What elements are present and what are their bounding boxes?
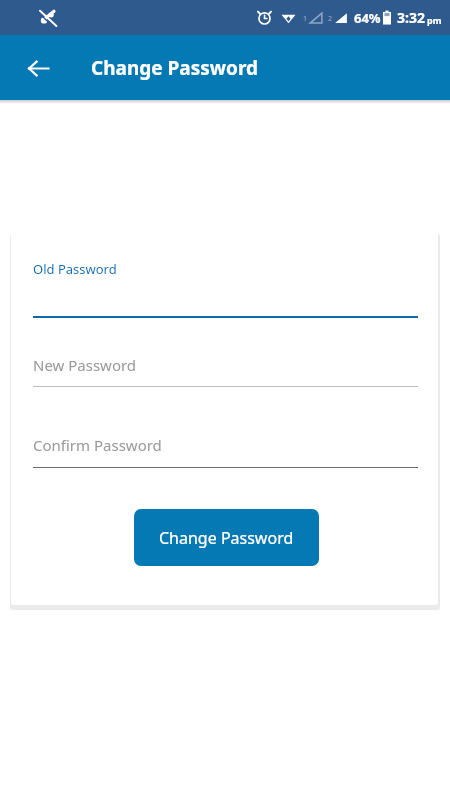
staticText: Change Password <box>159 527 294 549</box>
staticText: Old Password <box>33 260 117 278</box>
button[interactable]: Change Password <box>134 509 319 566</box>
staticText: 2 <box>328 14 333 24</box>
staticText: 3:32 <box>397 8 425 27</box>
staticText: 64% <box>354 9 381 27</box>
button[interactable]: Back <box>16 46 60 90</box>
staticText: pm <box>427 14 442 26</box>
button[interactable]: New Password <box>11 355 438 387</box>
staticText: Confirm Password <box>33 435 162 455</box>
button[interactable]: Old Password <box>11 260 438 318</box>
staticText: Change Password <box>91 55 259 81</box>
staticText: 1 <box>303 14 308 24</box>
staticText: New Password <box>33 355 137 375</box>
button[interactable]: Confirm Password <box>11 435 438 468</box>
